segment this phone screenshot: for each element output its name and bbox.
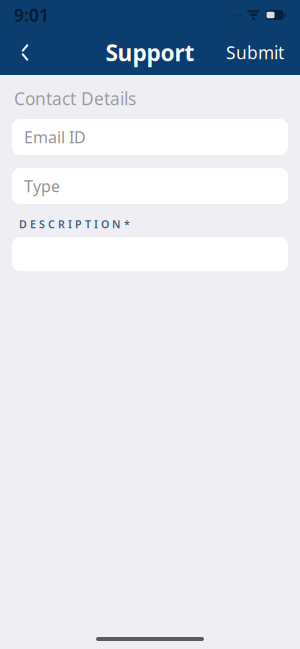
staticText: 9:01 bbox=[14, 3, 49, 26]
staticText: Submit bbox=[226, 41, 284, 64]
button[interactable]: Back bbox=[10, 35, 40, 69]
staticText: Type bbox=[24, 175, 60, 197]
staticText: Email ID bbox=[24, 126, 86, 148]
button[interactable]: Submit bbox=[222, 33, 288, 72]
button[interactable]: Type bbox=[12, 168, 288, 204]
staticText: D E S C R I P T I O N bbox=[19, 217, 120, 231]
staticText: Contact Details bbox=[14, 87, 136, 110]
button[interactable]: Email ID bbox=[12, 119, 288, 155]
staticText: * bbox=[124, 217, 130, 231]
staticText: Support bbox=[105, 37, 194, 67]
